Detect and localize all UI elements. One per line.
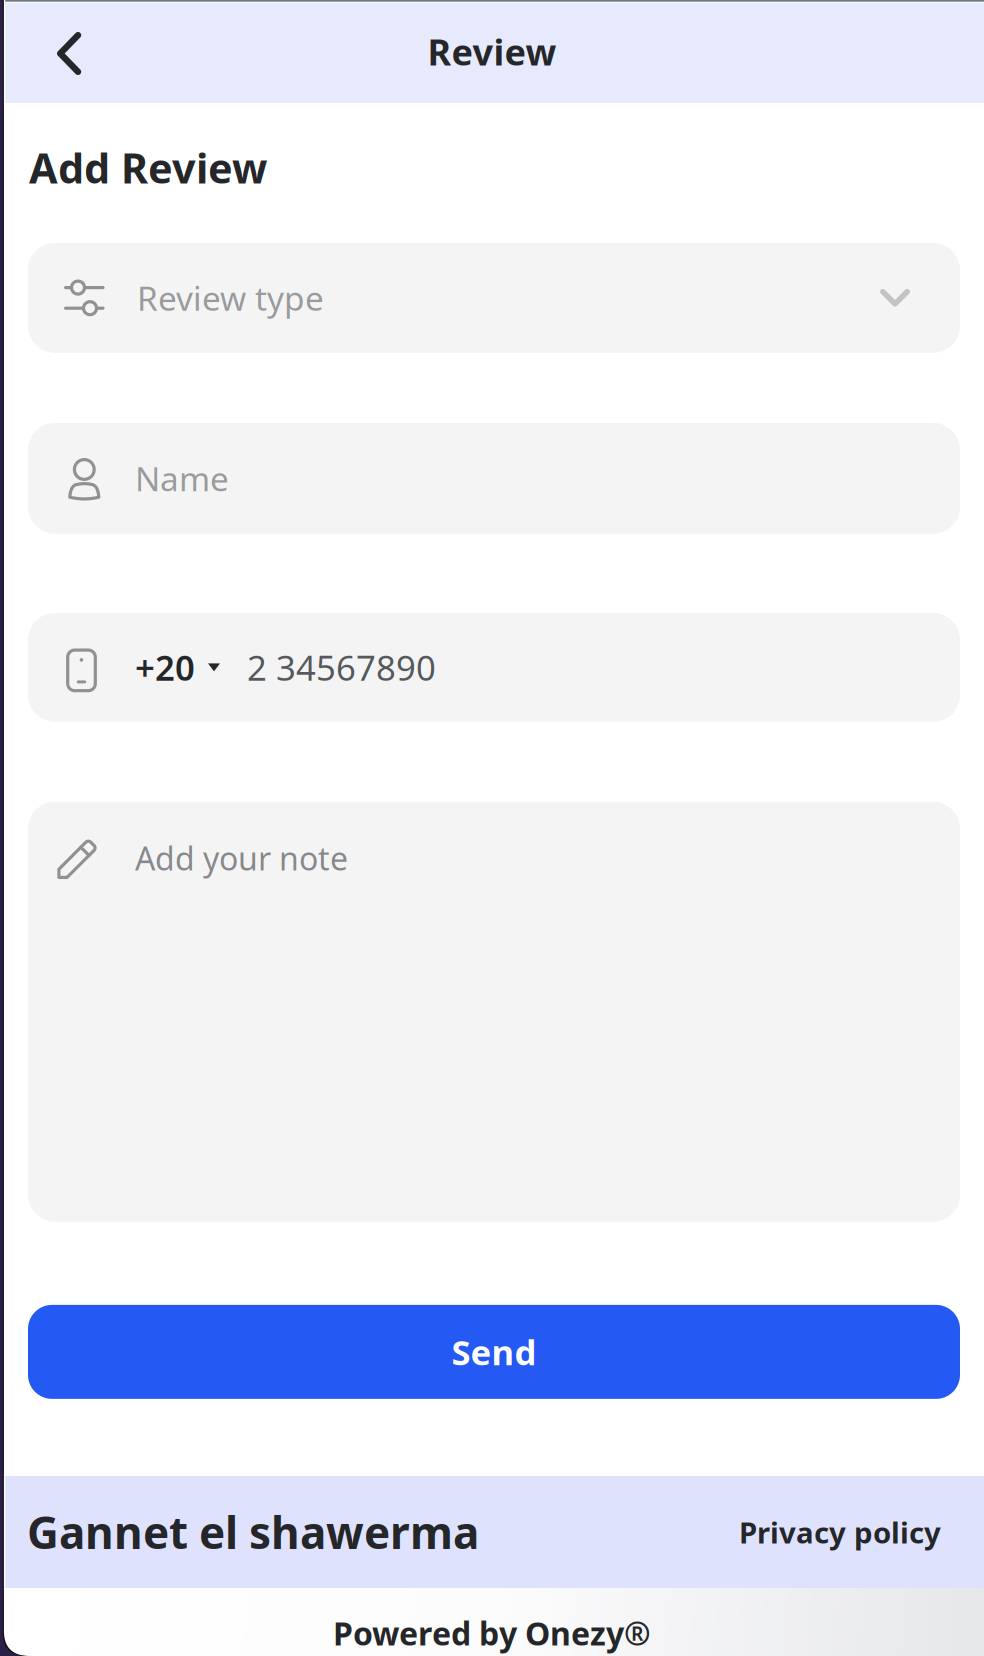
button[interactable]: +20: [0, 613, 984, 722]
staticText: Add Review: [29, 140, 267, 195]
button[interactable]: Back: [0, 0, 115, 103]
staticText: Privacy policy: [739, 1512, 941, 1551]
staticText: Review type: [137, 276, 324, 320]
staticText: Add your note: [135, 837, 348, 879]
button[interactable]: Send: [0, 1305, 984, 1399]
button[interactable]: Review type: [0, 243, 984, 353]
button[interactable]: Privacy policy: [739, 1512, 941, 1551]
staticText: Powered by Onezy®: [333, 1612, 651, 1654]
button[interactable]: Name: [0, 423, 984, 534]
staticText: +20: [135, 644, 195, 690]
staticText: Send: [451, 1329, 536, 1375]
button[interactable]: Add your note: [0, 802, 984, 1222]
staticText: 2 34567890: [247, 644, 436, 690]
staticText: Review: [427, 28, 556, 75]
staticText: Name: [135, 456, 229, 501]
staticText: Gannet el shawerma: [27, 1503, 479, 1561]
